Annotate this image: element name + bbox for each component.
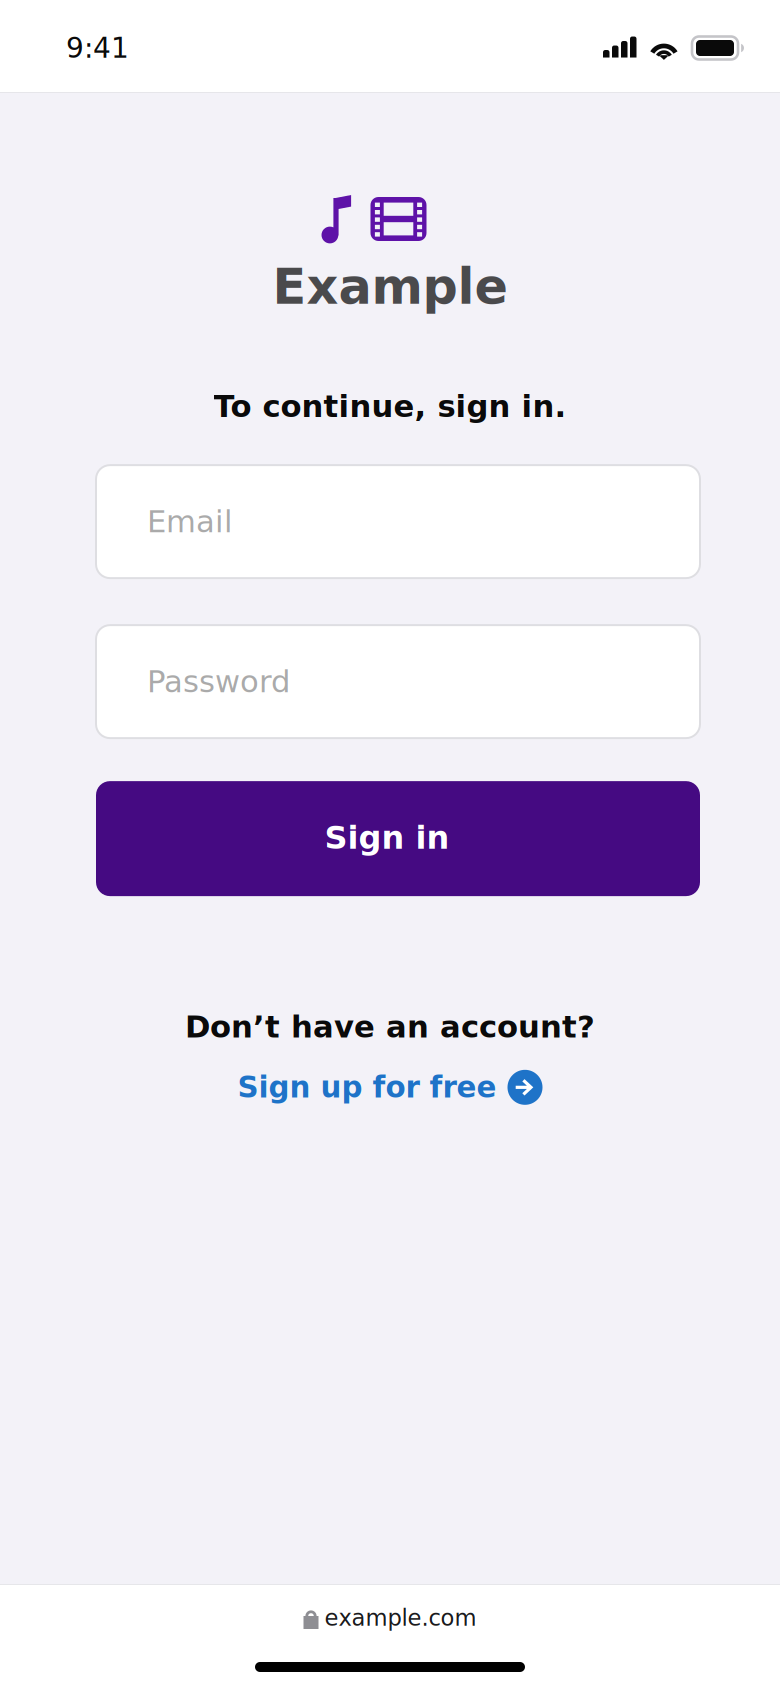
button[interactable]: Password [96, 625, 700, 738]
staticText: Don’t have an account? [185, 1009, 595, 1045]
staticText: To continue, sign in. [213, 388, 566, 424]
button[interactable]: Email [96, 465, 700, 578]
staticText: example.com [324, 1605, 476, 1631]
staticText: Password [147, 664, 290, 699]
staticText: Example [272, 258, 507, 315]
staticText: Email [147, 504, 233, 539]
staticText: Sign up for free [237, 1070, 496, 1104]
staticText: 9:41 [66, 32, 129, 64]
button[interactable]: Sign in [96, 781, 700, 896]
staticText: Sign in [324, 819, 449, 856]
button[interactable]: Sign up for free [237, 1070, 542, 1105]
